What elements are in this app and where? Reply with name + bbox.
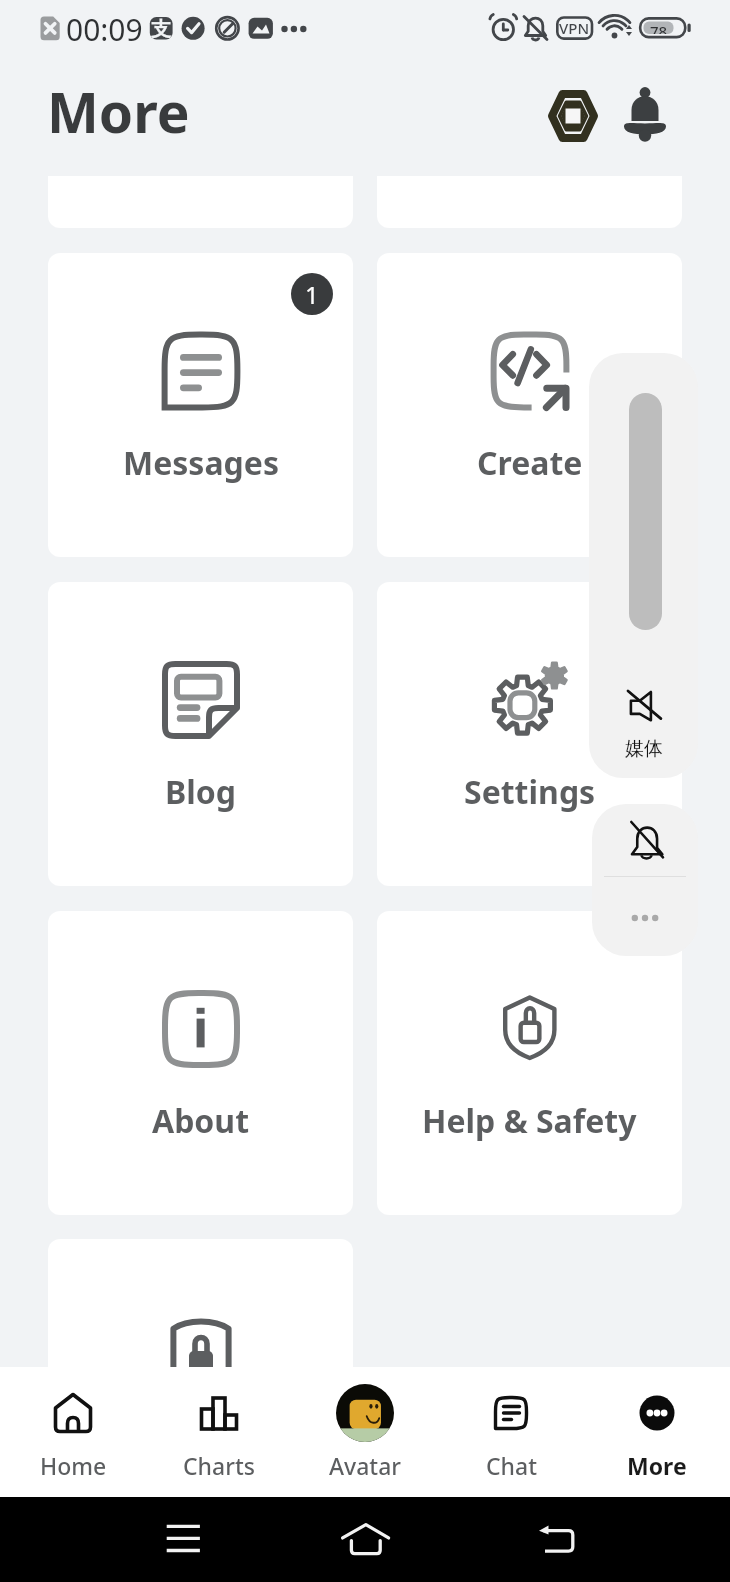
staticText: Help & Safety: [422, 1099, 637, 1143]
button[interactable]: About: [48, 911, 353, 1215]
button[interactable]: Notifications: [609, 80, 681, 152]
staticText: 媒体: [625, 737, 663, 761]
staticText: VPN: [559, 18, 590, 38]
button[interactable]: [377, 0, 682, 228]
staticText: 1: [305, 278, 319, 311]
button[interactable]: Blog: [48, 582, 353, 886]
button[interactable]: Chat: [438, 1367, 584, 1497]
staticText: Avatar: [329, 1450, 402, 1481]
button[interactable]: Charts: [146, 1367, 292, 1497]
staticText: Chat: [486, 1450, 537, 1481]
button[interactable]: Home: [243, 1497, 486, 1582]
button[interactable]: [48, 0, 353, 228]
button[interactable]: Avatar: [292, 1367, 438, 1497]
staticText: 00:09: [66, 9, 143, 50]
button[interactable]: More: [584, 1367, 730, 1497]
button[interactable]: Robux balance: [537, 80, 609, 152]
button[interactable]: Messages: [48, 253, 353, 557]
staticText: Charts: [183, 1450, 255, 1481]
staticText: Create: [477, 441, 583, 485]
button[interactable]: Help & Safety: [377, 911, 682, 1215]
staticText: Messages: [123, 441, 279, 485]
staticText: About: [152, 1099, 250, 1143]
button[interactable]: Privacy: [48, 1239, 353, 1367]
button[interactable]: Home: [0, 1367, 146, 1497]
staticText: 78: [650, 21, 668, 34]
button[interactable]: Back: [486, 1497, 730, 1582]
button[interactable]: Recents: [0, 1497, 243, 1582]
staticText: Blog: [165, 770, 237, 814]
button[interactable]: Create: [377, 253, 682, 557]
button[interactable]: Settings: [377, 582, 682, 886]
staticText: More: [47, 74, 190, 149]
staticText: Settings: [464, 770, 596, 814]
staticText: Home: [40, 1450, 107, 1481]
staticText: 支: [151, 17, 171, 42]
staticText: More: [627, 1450, 687, 1481]
